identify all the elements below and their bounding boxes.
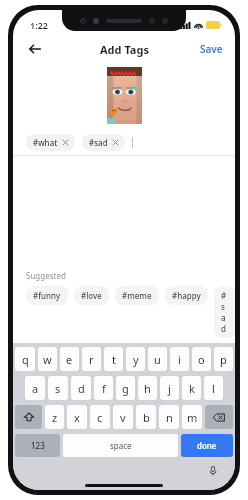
button[interactable]: c — [90, 405, 110, 429]
staticText: #sad — [89, 137, 108, 148]
staticText: y — [133, 352, 139, 367]
staticText: i — [178, 352, 181, 367]
button[interactable]: #sad — [214, 286, 235, 338]
button[interactable]: e — [60, 347, 79, 371]
staticText: s — [55, 381, 61, 396]
staticText: space — [110, 440, 132, 451]
button[interactable]: j — [160, 376, 179, 400]
button[interactable]: x — [67, 405, 87, 429]
staticText: o — [198, 352, 205, 367]
button[interactable]: #happy — [165, 286, 208, 305]
button[interactable]: b — [136, 405, 156, 429]
button[interactable]: #meme — [115, 286, 159, 305]
button[interactable]: t — [104, 347, 123, 371]
staticText: h — [144, 381, 151, 396]
button[interactable]: p — [214, 347, 233, 371]
staticText: #what — [33, 137, 58, 148]
staticText: Add Tags — [100, 42, 149, 57]
button[interactable]: q — [15, 347, 35, 371]
staticText: w — [43, 352, 52, 367]
staticText: m — [187, 410, 198, 425]
button[interactable]: #funny — [26, 286, 68, 305]
button[interactable]: g — [116, 376, 135, 400]
button[interactable]: o — [192, 347, 211, 371]
button[interactable]: y — [126, 347, 145, 371]
staticText: n — [166, 410, 173, 425]
button[interactable]: Shift — [15, 405, 42, 429]
staticText: l — [212, 381, 215, 396]
button[interactable]: space — [63, 434, 178, 457]
staticText: v — [120, 410, 126, 425]
button[interactable]: #love — [74, 286, 109, 305]
staticText: r — [89, 352, 94, 367]
staticText: #love — [81, 290, 102, 301]
button[interactable]: u — [148, 347, 167, 371]
button[interactable]: Dictation — [205, 463, 221, 479]
button[interactable]: done — [181, 434, 233, 457]
button[interactable]: Backspace — [205, 405, 233, 429]
staticText: c — [97, 410, 103, 425]
staticText: 1:22 — [30, 19, 48, 31]
button[interactable]: m — [182, 405, 202, 429]
button[interactable]: i — [170, 347, 189, 371]
staticText: done — [197, 440, 217, 451]
staticText: #meme — [122, 290, 152, 301]
button[interactable]: Back — [23, 37, 47, 61]
button[interactable]: #sad — [82, 134, 125, 151]
button[interactable]: v — [113, 405, 133, 429]
staticText: #sad — [221, 290, 228, 334]
button[interactable]: d — [71, 376, 91, 400]
button[interactable]: l — [204, 376, 223, 400]
staticText: f — [102, 381, 106, 396]
button[interactable]: Save — [188, 38, 235, 60]
staticText: e — [66, 352, 73, 367]
staticText: a — [32, 381, 39, 396]
button[interactable]: z — [45, 405, 64, 429]
staticText: p — [220, 352, 227, 367]
button[interactable]: w — [38, 347, 57, 371]
button[interactable]: r — [82, 347, 101, 371]
staticText: Suggested — [26, 270, 66, 281]
staticText: z — [52, 410, 58, 425]
button[interactable]: n — [159, 405, 179, 429]
staticText: b — [143, 410, 150, 425]
staticText: d — [78, 381, 85, 396]
staticText: Save — [200, 42, 223, 56]
button[interactable]: f — [94, 376, 113, 400]
staticText: j — [168, 381, 171, 396]
staticText: g — [122, 381, 129, 396]
button[interactable]: s — [48, 376, 68, 400]
staticText: 123 — [31, 440, 45, 451]
button[interactable]: k — [182, 376, 201, 400]
staticText: q — [22, 352, 29, 367]
staticText: t — [112, 352, 116, 367]
staticText: k — [189, 381, 195, 396]
staticText: x — [74, 410, 80, 425]
button[interactable]: a — [25, 376, 45, 400]
staticText: #happy — [172, 290, 201, 301]
button[interactable]: #what — [26, 134, 75, 151]
button[interactable]: h — [138, 376, 157, 400]
button[interactable]: 123 — [15, 434, 60, 457]
staticText: #funny — [33, 290, 61, 301]
staticText: u — [154, 352, 161, 367]
